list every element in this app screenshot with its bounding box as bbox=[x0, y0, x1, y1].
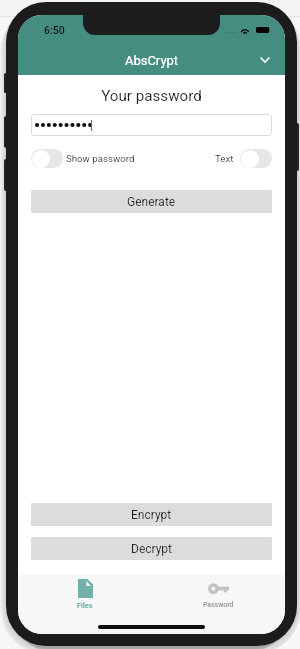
button[interactable] bbox=[31, 114, 272, 136]
staticText: Your password bbox=[18, 87, 285, 105]
button[interactable]: Encrypt bbox=[31, 503, 272, 526]
staticText: Files bbox=[77, 601, 93, 610]
button[interactable]: Decrypt bbox=[31, 537, 272, 560]
staticText: Encrypt bbox=[131, 508, 172, 522]
staticText: Show password bbox=[66, 153, 135, 164]
staticText: Generate bbox=[127, 195, 176, 209]
button[interactable]: Generate bbox=[31, 190, 272, 213]
staticText: Text bbox=[215, 153, 234, 164]
button[interactable]: Text bbox=[215, 149, 272, 168]
staticText: Decrypt bbox=[131, 542, 173, 556]
button[interactable]: Files bbox=[18, 575, 151, 625]
button[interactable]: Password bbox=[151, 575, 285, 625]
button[interactable]: Text mode bbox=[240, 149, 272, 168]
button[interactable]: Show password bbox=[31, 149, 63, 168]
staticText: AbsCrypt bbox=[18, 53, 285, 68]
button[interactable]: Show password bbox=[31, 149, 135, 168]
staticText: 6:50 bbox=[44, 24, 65, 36]
button[interactable]: More options bbox=[254, 49, 276, 71]
staticText: Password bbox=[203, 601, 234, 609]
